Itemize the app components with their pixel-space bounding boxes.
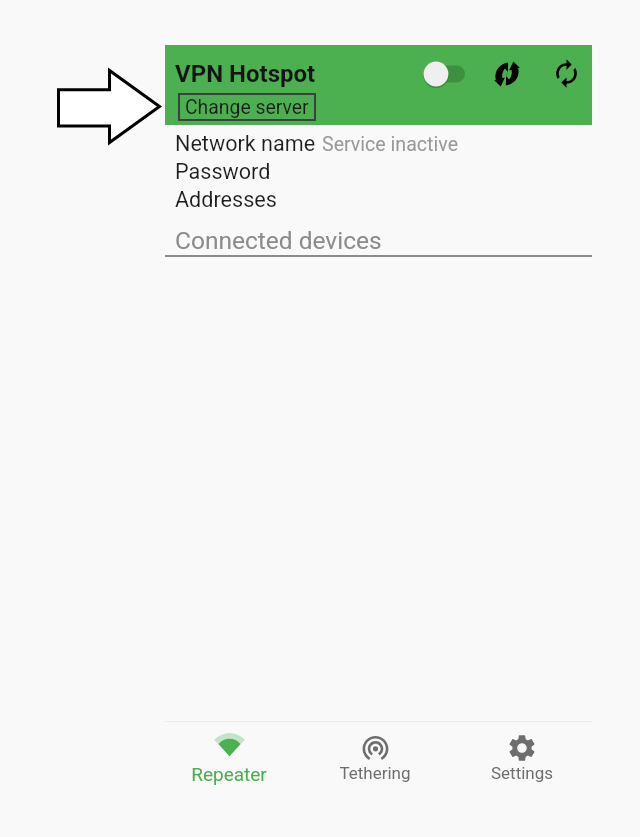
staticText: Settings bbox=[458, 763, 586, 783]
button[interactable]: Password bbox=[165, 156, 592, 184]
button[interactable]: Tethering bbox=[311, 727, 439, 795]
button[interactable]: Refresh bbox=[551, 58, 582, 89]
staticText: Password bbox=[175, 159, 271, 184]
button[interactable]: Enable hotspot bbox=[418, 56, 470, 92]
button[interactable]: Repeater bbox=[165, 727, 293, 795]
button[interactable]: Change server bbox=[179, 94, 315, 120]
staticText: Network name bbox=[175, 131, 316, 156]
button[interactable]: Network name bbox=[165, 128, 592, 156]
staticText: Repeater bbox=[165, 763, 293, 785]
staticText: Service inactive bbox=[322, 133, 459, 156]
staticText: Connected devices bbox=[175, 226, 382, 255]
staticText: Tethering bbox=[311, 763, 439, 783]
button[interactable]: Addresses bbox=[165, 184, 592, 212]
button[interactable]: Settings bbox=[458, 727, 586, 795]
staticText: VPN Hotspot bbox=[175, 60, 316, 88]
staticText: Change server bbox=[185, 96, 309, 119]
button[interactable]: Swap connection bbox=[493, 60, 521, 88]
staticText: Addresses bbox=[175, 187, 277, 212]
